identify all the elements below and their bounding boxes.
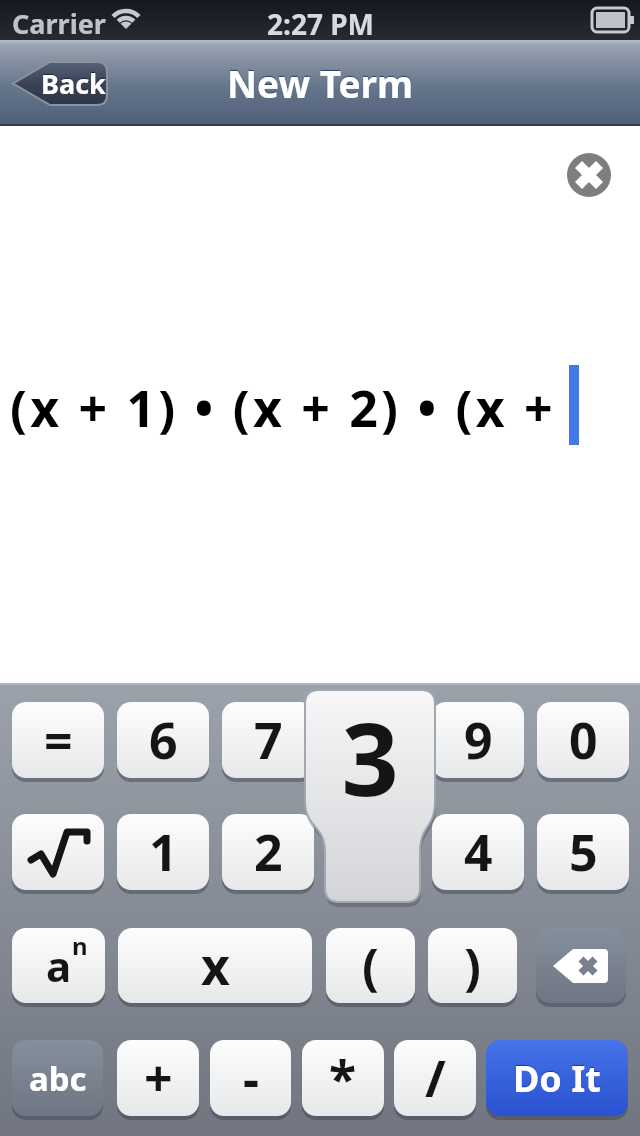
staticText: 1 bbox=[149, 818, 178, 886]
staticText: 5 bbox=[569, 818, 598, 886]
button[interactable]: x bbox=[118, 928, 312, 1003]
staticText: = bbox=[44, 706, 73, 774]
staticText: 9 bbox=[464, 706, 493, 774]
button[interactable] bbox=[567, 153, 611, 197]
button[interactable]: abc bbox=[12, 1040, 103, 1116]
button[interactable]: 3 bbox=[327, 814, 419, 890]
button[interactable]: 0 bbox=[537, 702, 629, 778]
staticText: Back bbox=[41, 65, 106, 102]
button[interactable]: 1 bbox=[117, 814, 209, 890]
staticText: + bbox=[144, 1044, 173, 1112]
button[interactable]: 6 bbox=[117, 702, 209, 778]
staticText: x bbox=[201, 932, 230, 1000]
button[interactable]: + bbox=[117, 1040, 199, 1116]
staticText: Carrier bbox=[12, 5, 106, 42]
button[interactable]: / bbox=[394, 1040, 476, 1116]
staticText: ) bbox=[464, 932, 481, 1000]
button[interactable]: * bbox=[302, 1040, 384, 1116]
button[interactable]: 4 bbox=[432, 814, 524, 890]
button[interactable]: 9 bbox=[432, 702, 524, 778]
staticText: - bbox=[243, 1044, 259, 1112]
button[interactable] bbox=[536, 928, 626, 1003]
staticText: 8 bbox=[359, 706, 388, 774]
button[interactable]: 2 bbox=[222, 814, 314, 890]
staticText: 6 bbox=[149, 706, 178, 774]
button[interactable]: = bbox=[12, 702, 104, 778]
button[interactable]: ( bbox=[326, 928, 415, 1003]
staticText: (x + 1) • (x + 2) • (x + bbox=[10, 374, 556, 442]
button[interactable]: ) bbox=[428, 928, 517, 1003]
staticText: 7 bbox=[254, 706, 283, 774]
button[interactable]: - bbox=[210, 1040, 291, 1116]
button[interactable]: 8 bbox=[327, 702, 419, 778]
staticText: New Term bbox=[227, 58, 414, 108]
staticText: n bbox=[72, 929, 88, 962]
staticText: Do It bbox=[513, 1054, 601, 1103]
staticText: ( bbox=[362, 932, 379, 1000]
button[interactable] bbox=[12, 814, 104, 890]
button[interactable]: 7 bbox=[222, 702, 314, 778]
button[interactable]: Do It bbox=[486, 1040, 628, 1116]
button[interactable]: a bbox=[12, 928, 105, 1003]
staticText: / bbox=[425, 1044, 446, 1112]
staticText: a bbox=[46, 937, 72, 994]
staticText: abc bbox=[29, 1056, 87, 1101]
staticText: 2:27 PM bbox=[267, 5, 374, 43]
button[interactable]: Back bbox=[10, 60, 110, 107]
staticText: 2 bbox=[254, 818, 283, 886]
staticText: 3 bbox=[305, 689, 435, 825]
staticText: 3 bbox=[359, 818, 388, 886]
staticText: 4 bbox=[464, 818, 493, 886]
staticText: 0 bbox=[569, 706, 598, 774]
button[interactable]: 5 bbox=[537, 814, 629, 890]
staticText: * bbox=[329, 1044, 357, 1112]
